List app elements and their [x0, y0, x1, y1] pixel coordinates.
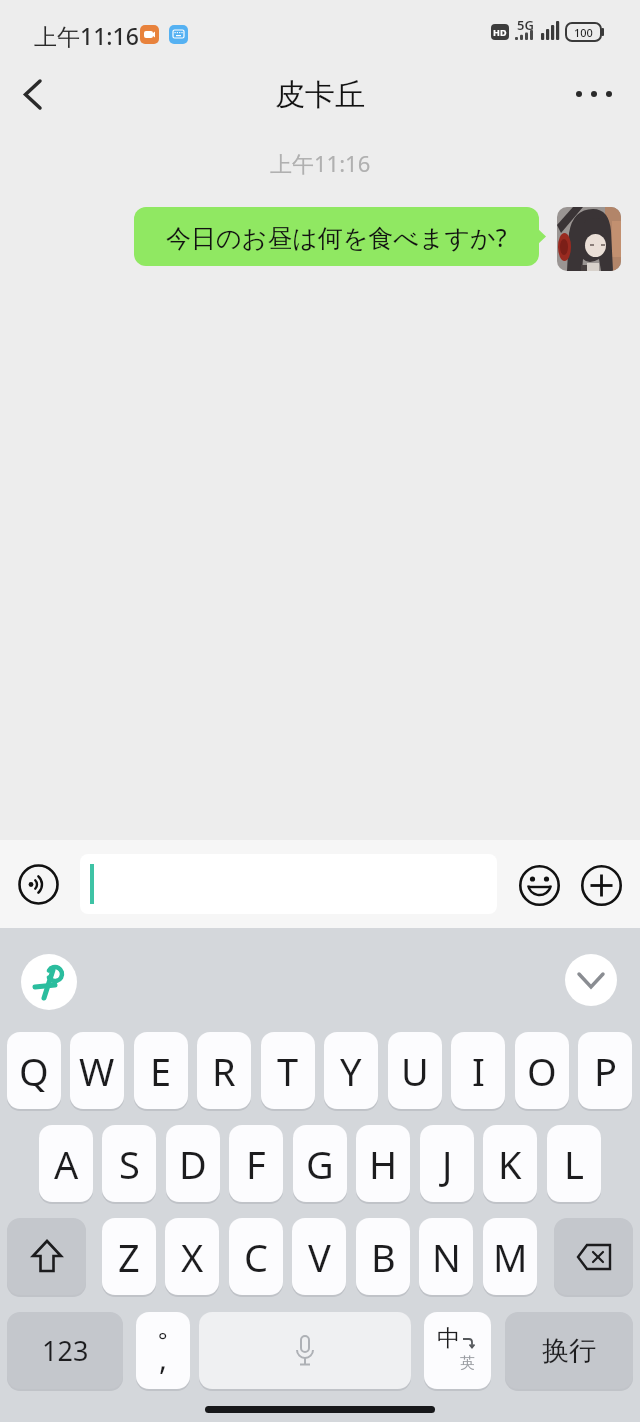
button[interactable]: H	[356, 1125, 410, 1202]
staticText: K	[498, 1138, 522, 1190]
staticText: C	[244, 1231, 269, 1283]
button[interactable]: A	[39, 1125, 93, 1202]
button[interactable]: °	[136, 1312, 190, 1389]
staticText: V	[308, 1231, 331, 1283]
staticText: 100	[574, 25, 593, 40]
staticText: S	[119, 1138, 140, 1190]
staticText: 上午11:16	[270, 148, 371, 178]
staticText: A	[54, 1138, 79, 1190]
staticText: 5G	[517, 16, 534, 34]
staticText: 123	[42, 1332, 89, 1369]
staticText: L	[564, 1138, 584, 1190]
button[interactable]: B	[356, 1218, 410, 1295]
button[interactable]: V	[292, 1218, 346, 1295]
staticText: E	[150, 1045, 172, 1097]
staticText: B	[371, 1231, 396, 1283]
button[interactable]	[21, 954, 77, 1010]
staticText: N	[432, 1231, 461, 1283]
button[interactable]: C	[229, 1218, 283, 1295]
button[interactable]: G	[293, 1125, 347, 1202]
button[interactable]	[10, 72, 54, 116]
button[interactable]: E	[134, 1032, 188, 1109]
button[interactable]: N	[419, 1218, 473, 1295]
staticText: 英	[460, 1354, 475, 1373]
button[interactable]	[557, 207, 621, 271]
button[interactable]: 换行	[505, 1312, 633, 1389]
staticText: 皮卡丘	[275, 76, 365, 114]
button[interactable]	[14, 860, 62, 908]
button[interactable]	[80, 854, 497, 914]
button[interactable]: W	[70, 1032, 124, 1109]
button[interactable]	[554, 1218, 633, 1295]
button[interactable]: L	[547, 1125, 601, 1202]
button[interactable]	[566, 72, 626, 116]
staticText: T	[277, 1045, 299, 1097]
staticText: °	[158, 1324, 168, 1354]
staticText: I	[472, 1045, 485, 1097]
button[interactable]: X	[165, 1218, 219, 1295]
button[interactable]: T	[261, 1032, 315, 1109]
staticText: G	[306, 1138, 334, 1190]
button[interactable]	[199, 1312, 411, 1389]
staticText: F	[246, 1138, 266, 1190]
staticText: O	[527, 1045, 557, 1097]
button[interactable]: 中	[424, 1312, 491, 1389]
button[interactable]: I	[451, 1032, 505, 1109]
button[interactable]	[565, 954, 617, 1006]
staticText: 换行	[542, 1334, 596, 1368]
button[interactable]: 今日のお昼は何を食べますか?	[134, 207, 539, 266]
button[interactable]: S	[102, 1125, 156, 1202]
button[interactable]	[577, 861, 625, 909]
staticText: X	[181, 1231, 204, 1283]
staticText: 上午11:16	[34, 20, 139, 51]
button[interactable]	[515, 861, 563, 909]
staticText: J	[442, 1138, 453, 1190]
staticText: 中	[437, 1324, 460, 1353]
staticText: D	[179, 1138, 207, 1190]
staticText: M	[493, 1231, 528, 1283]
button[interactable]: J	[420, 1125, 474, 1202]
staticText: ,	[159, 1338, 168, 1379]
staticText: Z	[118, 1231, 140, 1283]
staticText: W	[79, 1045, 115, 1097]
staticText: P	[594, 1045, 617, 1097]
button[interactable]: Z	[102, 1218, 156, 1295]
button[interactable]: D	[166, 1125, 220, 1202]
button[interactable]: R	[197, 1032, 251, 1109]
button[interactable]: U	[388, 1032, 442, 1109]
button[interactable]: F	[229, 1125, 283, 1202]
button[interactable]: M	[483, 1218, 537, 1295]
button[interactable]: Q	[7, 1032, 61, 1109]
staticText: R	[212, 1045, 236, 1097]
staticText: H	[369, 1138, 398, 1190]
staticText: Q	[19, 1045, 49, 1097]
staticText: HD	[493, 26, 507, 38]
staticText: U	[401, 1045, 429, 1097]
button[interactable]: 123	[7, 1312, 123, 1389]
button[interactable]: O	[515, 1032, 569, 1109]
button[interactable]: K	[483, 1125, 537, 1202]
button[interactable]	[7, 1218, 86, 1295]
staticText: 今日のお昼は何を食べますか?	[166, 220, 507, 254]
button[interactable]: Y	[324, 1032, 378, 1109]
button[interactable]: P	[578, 1032, 632, 1109]
staticText: Y	[340, 1045, 362, 1097]
